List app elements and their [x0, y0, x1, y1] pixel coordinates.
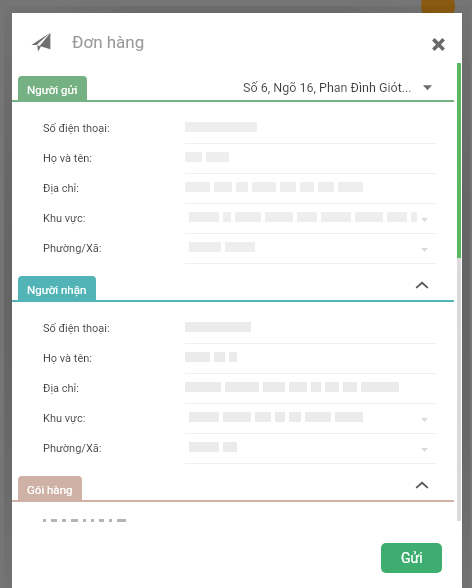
staticText: Địa chỉ:	[43, 382, 79, 395]
button[interactable]: Collapse section	[409, 472, 435, 498]
staticText: Gửi	[401, 550, 423, 566]
staticText: Phường/Xã:	[43, 242, 102, 255]
staticText: Phường/Xã:	[43, 442, 102, 455]
button[interactable]: Gói hàng	[18, 476, 82, 502]
button[interactable]: Dropdown	[416, 211, 432, 227]
button[interactable]: Dropdown	[416, 241, 432, 257]
button[interactable]: Gửi	[381, 543, 442, 573]
button[interactable]: Người nhận	[18, 276, 96, 302]
staticText: Người nhận	[27, 283, 87, 296]
staticText: Địa chỉ:	[43, 182, 79, 195]
staticText: Đơn hàng	[72, 32, 145, 52]
staticText: Khu vực:	[43, 212, 86, 225]
staticText: Khu vực:	[43, 412, 86, 425]
button[interactable]: Số 6, Ngõ 16, Phan Đình Giót...	[243, 76, 432, 98]
button[interactable]: Collapse section	[409, 272, 435, 298]
staticText: Người gửi	[27, 83, 78, 96]
staticText: Họ và tên:	[43, 152, 92, 165]
staticText: Họ và tên:	[43, 352, 92, 365]
staticText: Số 6, Ngõ 16, Phan Đình Giót...	[243, 80, 412, 95]
button[interactable]: Người gửi	[18, 76, 87, 102]
button[interactable]: Close	[424, 30, 452, 58]
button[interactable]: Dropdown	[416, 441, 432, 457]
staticText: Gói hàng	[27, 483, 73, 496]
button[interactable]: Dropdown	[416, 411, 432, 427]
staticText: Số điện thoại:	[43, 122, 110, 135]
staticText: Số điện thoại:	[43, 322, 110, 335]
